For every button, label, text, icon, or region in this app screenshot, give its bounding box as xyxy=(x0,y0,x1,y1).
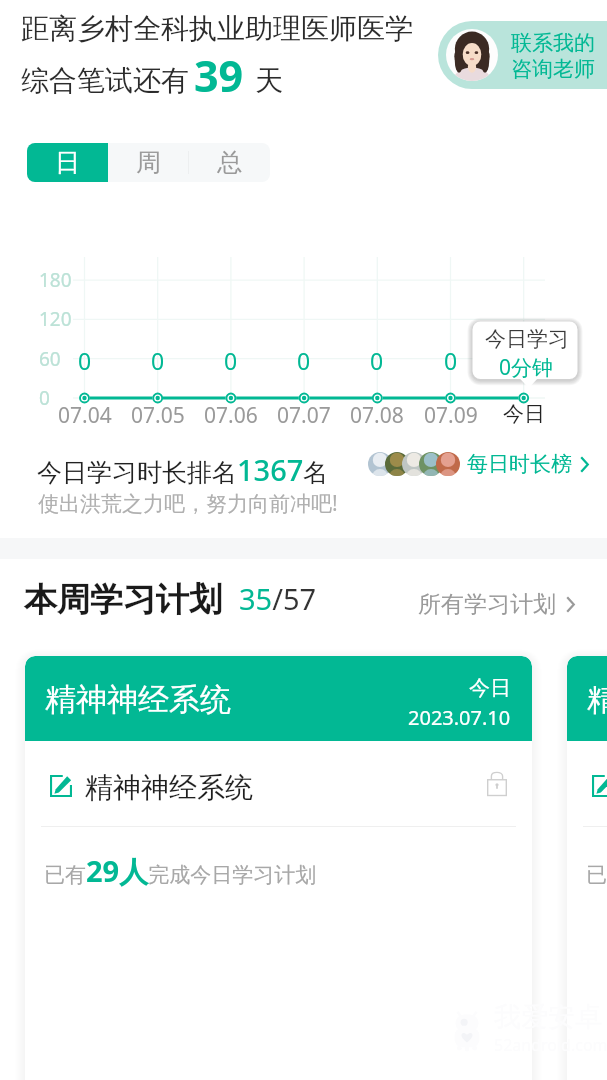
staticText: 联系我的 xyxy=(511,30,595,56)
staticText: 07.09 xyxy=(424,401,478,430)
staticText: 0 xyxy=(224,345,238,376)
staticText: 使出洪荒之力吧，努力向前冲吧! xyxy=(38,489,338,518)
button[interactable]: 日 xyxy=(27,143,108,182)
staticText: 0 xyxy=(297,345,311,376)
button[interactable]: Edit xyxy=(592,741,607,826)
staticText: 今日 xyxy=(469,675,511,701)
staticText: 今日学习时长排名1367名 xyxy=(37,450,329,489)
button[interactable]: 每日时长榜 xyxy=(368,447,589,481)
staticText: 天 xyxy=(255,63,283,98)
button[interactable]: 周 xyxy=(108,143,189,182)
other: Edit xyxy=(592,775,607,797)
staticText: 已有29人完成今日学习计划 xyxy=(44,851,317,891)
staticText: 07.08 xyxy=(350,401,404,430)
staticText: 综合笔试还有 xyxy=(21,63,189,98)
button[interactable]: 精神神经系统 xyxy=(25,656,532,1080)
staticText: 已有29人完成今日学习计划 xyxy=(586,851,607,891)
button[interactable]: 总 xyxy=(189,143,270,182)
staticText: 今日学习 xyxy=(485,326,569,352)
staticText: 精神神经系统 xyxy=(85,770,253,805)
staticText: 所有学习计划 xyxy=(418,590,556,618)
staticText: 精神神经系统 xyxy=(587,680,607,719)
button[interactable]: Edit xyxy=(50,741,507,826)
staticText: 周 xyxy=(136,147,161,178)
button[interactable]: 精神神经系统 xyxy=(567,656,607,1080)
staticText: 0 xyxy=(39,385,50,411)
staticText: 07.04 xyxy=(58,401,112,430)
staticText: 35/57 xyxy=(239,579,317,618)
staticText: 180 xyxy=(39,267,72,293)
staticText: 精神神经系统 xyxy=(45,680,231,719)
button[interactable]: 所有学习计划 xyxy=(418,590,575,618)
staticText: 2023.07.10 xyxy=(408,704,511,731)
staticText: 07.07 xyxy=(277,401,331,430)
staticText: 07.06 xyxy=(204,401,258,430)
staticText: 0 xyxy=(151,345,165,376)
staticText: 今日 xyxy=(503,401,545,427)
staticText: 0 xyxy=(78,345,92,376)
staticText: 总 xyxy=(217,147,242,178)
staticText: 距离乡村全科执业助理医师医学 xyxy=(21,11,413,46)
staticText: 39 xyxy=(194,46,244,105)
staticText: 日 xyxy=(55,147,80,178)
staticText: 0分钟 xyxy=(499,353,554,382)
staticText: 07.05 xyxy=(131,401,185,430)
staticText: 60 xyxy=(39,346,61,372)
other: Edit xyxy=(50,775,72,797)
staticText: 0 xyxy=(444,345,458,376)
staticText: 每日时长榜 xyxy=(467,451,572,477)
staticText: 0 xyxy=(370,345,384,376)
other: Locked xyxy=(487,771,507,796)
button[interactable]: 联系我的 xyxy=(438,21,607,89)
staticText: 120 xyxy=(39,306,72,332)
staticText: 本周学习计划 xyxy=(24,579,222,621)
staticText: 咨询老师 xyxy=(511,56,595,82)
